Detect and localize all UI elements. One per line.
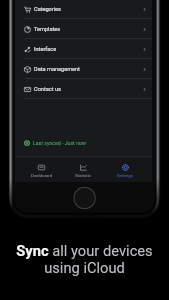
button[interactable]: Settings: [104, 156, 146, 182]
staticText: using iCloud: [0, 259, 169, 276]
staticText: Templates: [34, 26, 61, 33]
button[interactable]: Categories: [15, 0, 152, 19]
button[interactable]: Interface: [15, 39, 152, 59]
staticText: Last synced - Just now: [33, 140, 86, 146]
button[interactable]: Statistic: [62, 156, 104, 182]
button[interactable]: Templates: [15, 19, 152, 39]
staticText: Statistic: [75, 173, 92, 178]
button[interactable]: Contact us: [15, 79, 152, 99]
staticText: Sync all your devices: [0, 242, 169, 259]
staticText: Interface: [34, 46, 57, 53]
staticText: Settings: [117, 173, 134, 178]
staticText: Data management: [34, 66, 80, 73]
button[interactable]: Dashboard: [21, 156, 62, 182]
staticText: Contact us: [34, 86, 61, 93]
staticText: Dashboard: [31, 173, 53, 178]
button[interactable]: Data management: [15, 59, 152, 79]
staticText: Categories: [34, 6, 61, 13]
